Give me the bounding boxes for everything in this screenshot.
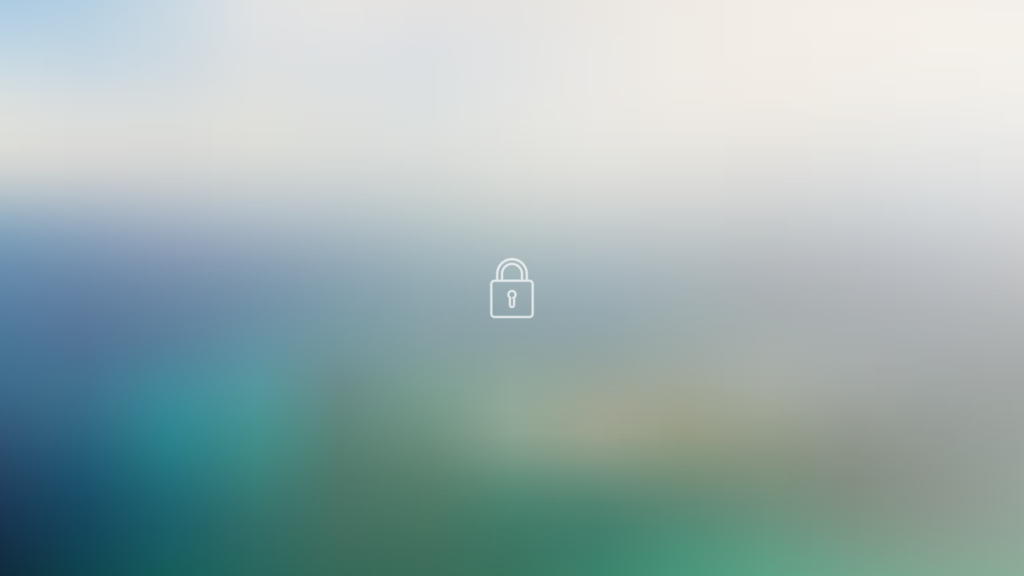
button[interactable]: Locked <box>491 259 533 317</box>
